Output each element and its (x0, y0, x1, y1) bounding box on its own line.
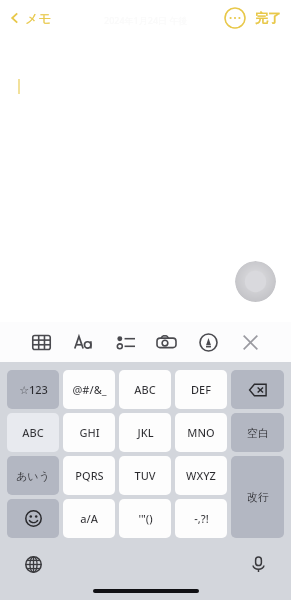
button[interactable]: More options (224, 7, 246, 29)
staticText: MNO (187, 425, 215, 440)
staticText: メモ (25, 10, 52, 26)
button[interactable]: '"() (119, 499, 171, 538)
button[interactable]: 完了 (255, 10, 281, 26)
staticText: TUV (134, 468, 156, 483)
staticText: a/A (80, 511, 98, 526)
staticText: @#/&_ (72, 382, 107, 397)
button[interactable]: JKL (119, 413, 171, 452)
button[interactable]: Close keyboard (237, 329, 263, 355)
staticText: ABC (22, 425, 44, 440)
button[interactable]: Handwriting tools (235, 261, 276, 302)
button[interactable]: ABC (119, 370, 171, 409)
staticText: 改行 (247, 490, 269, 504)
button[interactable]: emoji (7, 499, 59, 538)
button[interactable]: Camera (153, 329, 179, 355)
button[interactable]: Markup (195, 329, 221, 355)
button[interactable]: @#/&_ (63, 370, 115, 409)
button[interactable]: Text format (70, 329, 96, 355)
button[interactable]: DEF (175, 370, 227, 409)
button[interactable]: ABC (7, 413, 59, 452)
button[interactable]: WXYZ (175, 456, 227, 495)
staticText: -,?! (194, 511, 209, 526)
staticText: ABC (134, 382, 156, 397)
button[interactable]: Delete (231, 370, 284, 409)
staticText: DEF (191, 382, 211, 397)
button[interactable]: メモ (8, 10, 52, 26)
button[interactable]: PQRS (63, 456, 115, 495)
button[interactable]: 空白 (231, 413, 284, 452)
button[interactable]: ☆123 (7, 370, 59, 409)
button[interactable]: TUV (119, 456, 171, 495)
button[interactable]: GHI (63, 413, 115, 452)
staticText: GHI (79, 425, 100, 440)
staticText: '"() (138, 511, 153, 526)
button[interactable]: -,?! (175, 499, 227, 538)
button[interactable]: あいう (7, 456, 59, 495)
button[interactable]: 改行 (231, 456, 284, 538)
staticText: あいう (16, 469, 50, 483)
button[interactable]: MNO (175, 413, 227, 452)
staticText: 完了 (255, 10, 281, 26)
button[interactable]: Checklist (112, 329, 138, 355)
staticText: 空白 (247, 426, 269, 440)
staticText: JKL (137, 425, 154, 440)
staticText: ☆123 (19, 382, 48, 397)
button[interactable]: Table (28, 329, 54, 355)
button[interactable]: a/A (63, 499, 115, 538)
staticText: PQRS (75, 468, 104, 483)
staticText: WXYZ (186, 468, 216, 483)
button[interactable]: Switch keyboard (20, 551, 46, 577)
button[interactable]: Dictate (245, 551, 271, 577)
